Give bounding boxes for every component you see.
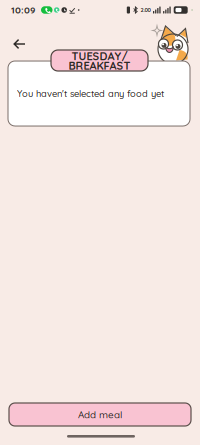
button[interactable]: Back [6, 30, 34, 58]
staticText: TUESDAY/ [71, 49, 127, 63]
staticText: You haven't selected any food yet [17, 88, 164, 99]
staticText: BREAKFAST [68, 59, 130, 72]
staticText: Add meal [78, 408, 122, 421]
staticText: 10:09 [11, 4, 35, 16]
staticText: 2.00 [140, 6, 150, 13]
button[interactable]: Add meal [9, 403, 191, 426]
